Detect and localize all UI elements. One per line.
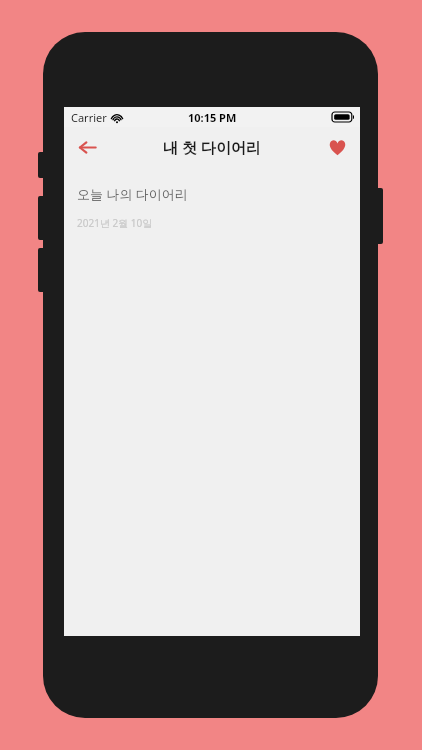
staticText: 내 첫 다이어리 bbox=[163, 137, 261, 157]
staticText: Carrier bbox=[71, 110, 107, 125]
button[interactable]: Favorite bbox=[320, 130, 354, 164]
staticText: 10:15 PM bbox=[188, 110, 237, 125]
staticText: 오늘 나의 다이어리 bbox=[77, 185, 188, 203]
staticText: 2021년 2월 10일 bbox=[77, 216, 153, 230]
button[interactable]: 오늘 나의 다이어리 bbox=[64, 167, 360, 230]
button[interactable]: Back bbox=[70, 130, 104, 164]
